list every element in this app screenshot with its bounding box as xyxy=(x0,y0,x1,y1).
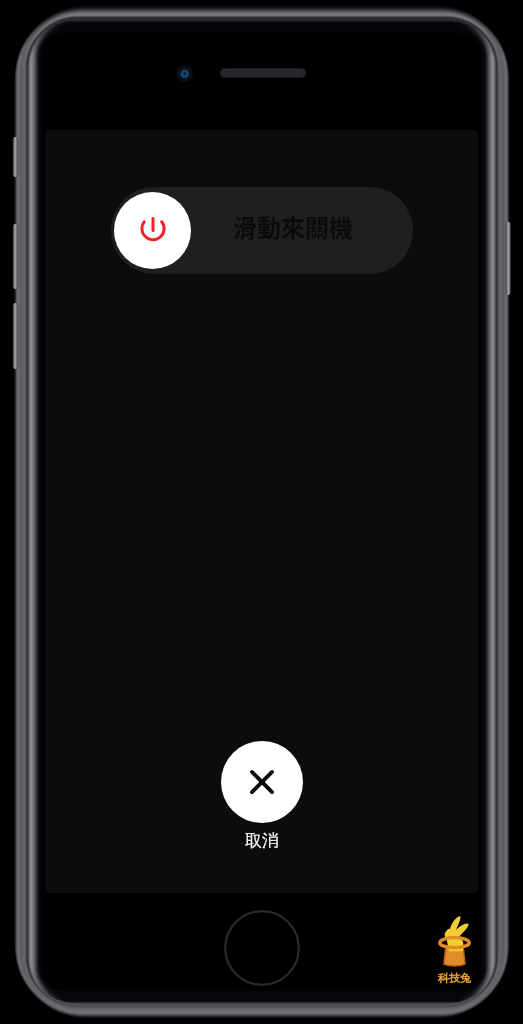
staticText: 取消 xyxy=(245,830,279,851)
button[interactable]: Home xyxy=(224,910,300,986)
button[interactable]: Cancel xyxy=(221,741,303,823)
button[interactable]: 滑動來關機 xyxy=(111,187,413,274)
staticText: 科技兔 xyxy=(438,971,471,985)
staticText: 滑動來關機 xyxy=(233,209,353,244)
